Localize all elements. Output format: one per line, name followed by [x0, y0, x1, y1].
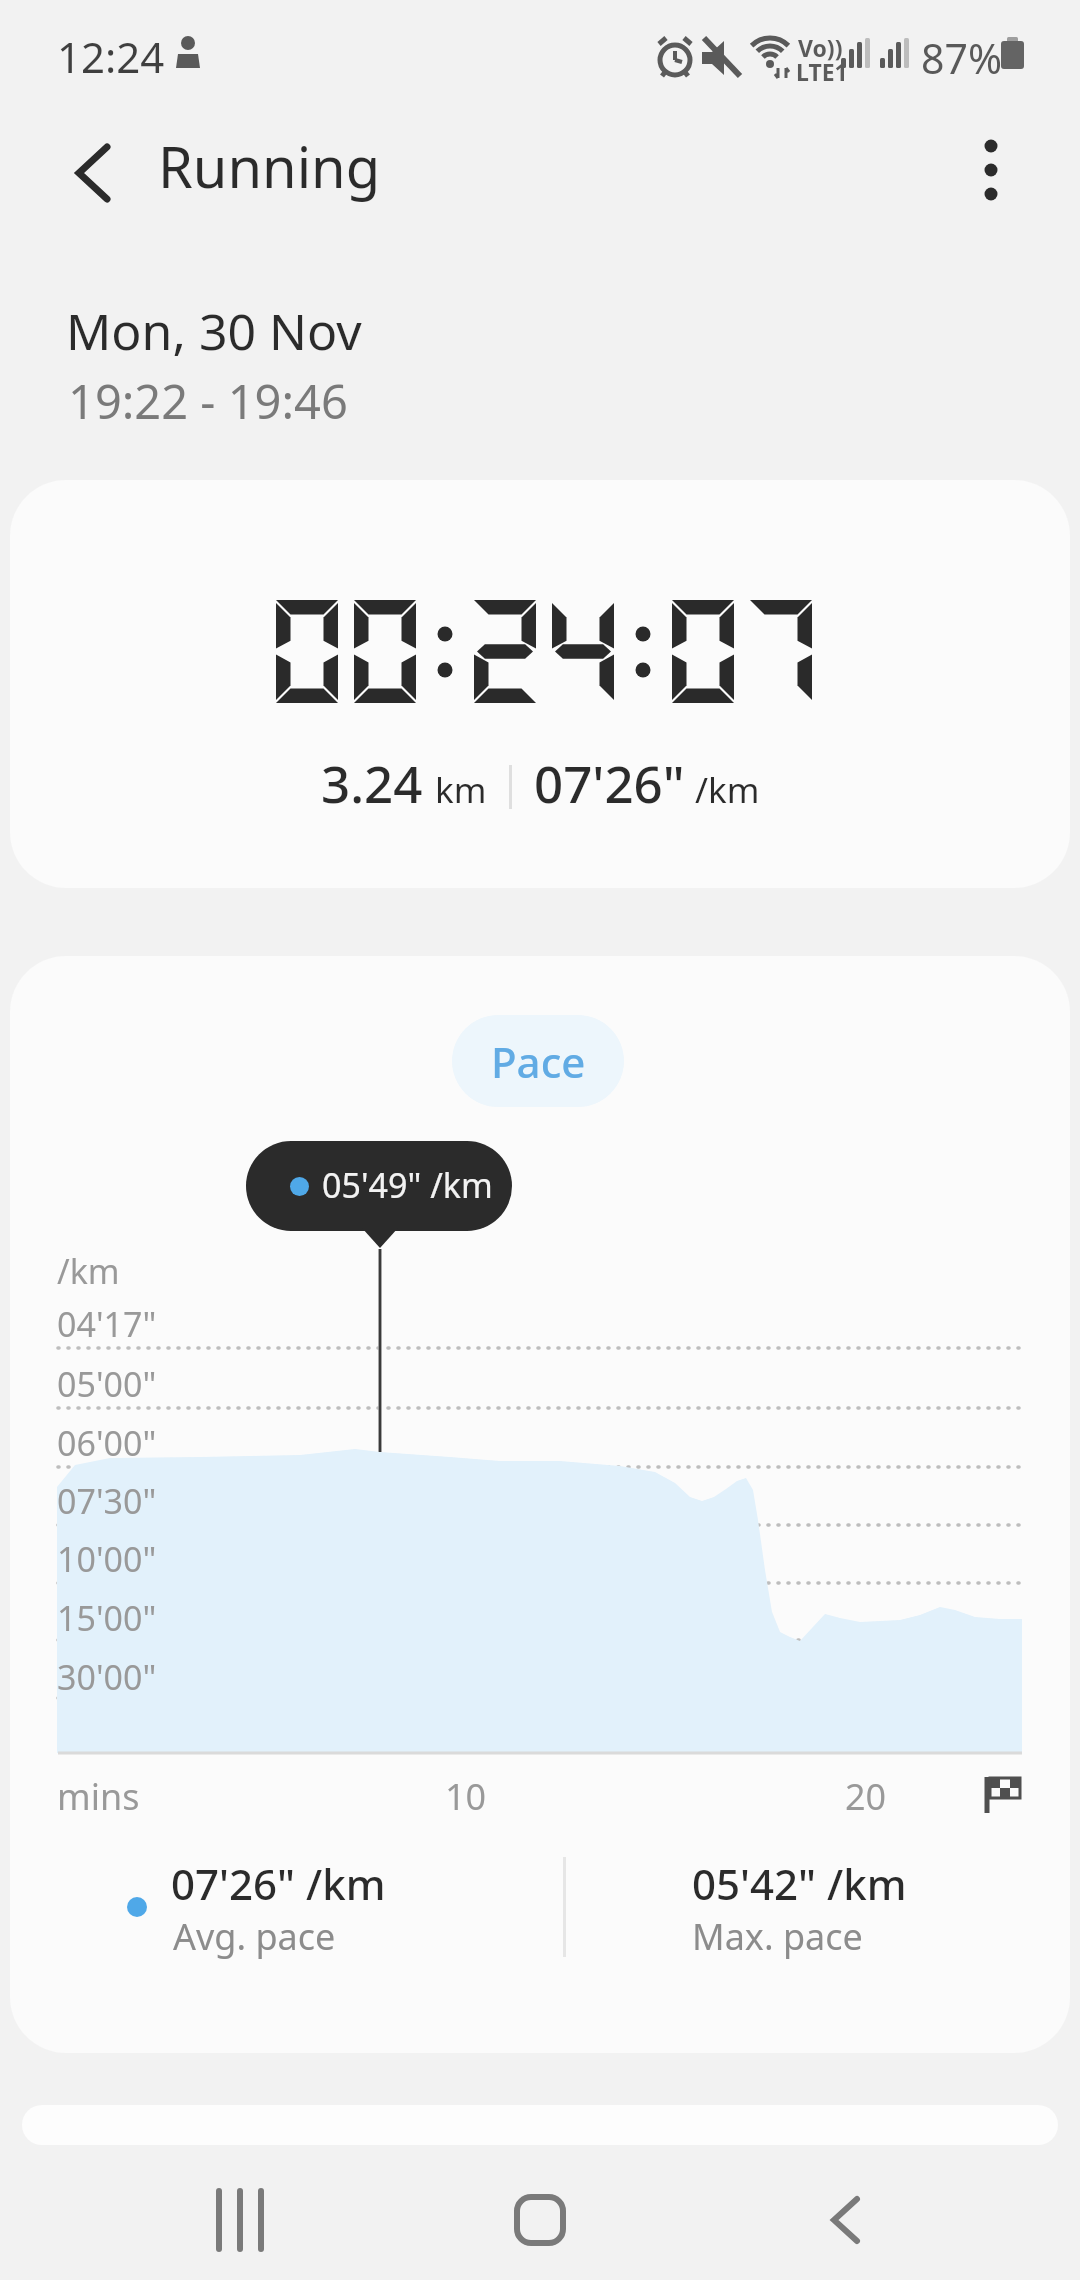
- staticText: 05'00": [57, 1361, 157, 1407]
- button[interactable]: [775, 2160, 915, 2280]
- staticText: 3.24: [321, 748, 423, 817]
- staticText: 15'00": [57, 1595, 157, 1641]
- staticText: 04'17": [57, 1301, 157, 1347]
- button[interactable]: [946, 126, 1036, 216]
- staticText: /km: [57, 1248, 120, 1294]
- staticText: Pace: [491, 1033, 586, 1090]
- staticText: /km: [695, 766, 760, 814]
- staticText: LTE1: [796, 56, 848, 87]
- staticText: 07'30": [57, 1478, 157, 1524]
- staticText: 10: [445, 1772, 487, 1821]
- staticText: 19:22 - 19:46: [68, 369, 348, 433]
- button[interactable]: [48, 128, 138, 218]
- staticText: 07'26" /km: [171, 1855, 386, 1912]
- button[interactable]: Pace: [452, 1015, 624, 1107]
- staticText: Vo)): [798, 32, 843, 63]
- staticText: 05'42" /km: [692, 1855, 907, 1912]
- staticText: 06'00": [57, 1420, 157, 1466]
- staticText: 07'26": [534, 748, 685, 817]
- staticText: 20: [845, 1772, 887, 1821]
- staticText: Avg. pace: [173, 1912, 336, 1961]
- staticText: 12:24: [57, 28, 165, 85]
- staticText: Max. pace: [692, 1912, 863, 1961]
- button[interactable]: [170, 2160, 310, 2280]
- staticText: 30'00": [57, 1654, 157, 1700]
- staticText: 87%: [921, 30, 1002, 86]
- staticText: Running: [158, 128, 381, 204]
- staticText: mins: [57, 1772, 140, 1821]
- staticText: 05'49" /km: [322, 1162, 493, 1208]
- staticText: km: [435, 766, 487, 814]
- staticText: 10'00": [57, 1536, 157, 1582]
- button[interactable]: [470, 2160, 610, 2280]
- staticText: Mon, 30 Nov: [66, 297, 362, 365]
